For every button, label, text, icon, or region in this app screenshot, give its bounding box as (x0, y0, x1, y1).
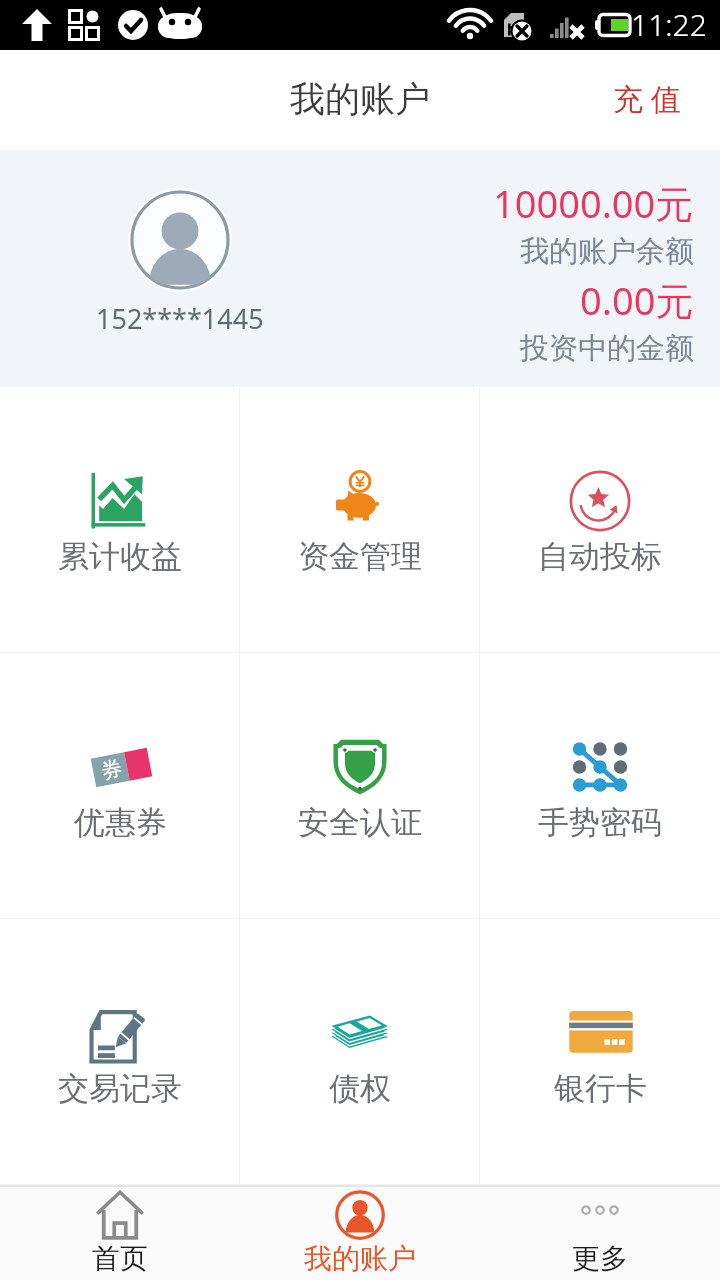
staticText: 自动投标 (538, 537, 662, 576)
button[interactable]: 我的账户 (240, 1187, 480, 1280)
staticText: 11:22 (631, 4, 707, 45)
staticText: 0.00元 (580, 274, 694, 326)
button[interactable]: 首页 (0, 1187, 240, 1280)
button[interactable]: 更多 (480, 1187, 720, 1280)
staticText: 我的账户 (290, 77, 430, 121)
button[interactable]: 交易记录 (0, 919, 240, 1184)
staticText: 累计收益 (58, 537, 182, 576)
button[interactable]: 手势密码 (480, 653, 720, 918)
staticText: 10000.00元 (493, 177, 694, 229)
staticText: 券 (99, 755, 125, 785)
staticText: 我的账户余额 (520, 233, 694, 270)
staticText: 更多 (572, 1241, 628, 1276)
button[interactable]: 自动投标 (480, 387, 720, 652)
button[interactable]: 累计收益 (0, 387, 240, 652)
button[interactable]: 债权 (240, 919, 480, 1184)
staticText: 交易记录 (58, 1069, 182, 1108)
staticText: 银行卡 (554, 1069, 647, 1108)
button[interactable]: 券 (0, 653, 240, 918)
staticText: 债权 (329, 1069, 391, 1108)
button[interactable]: 安全认证 (240, 653, 480, 918)
staticText: 充 值 (613, 78, 681, 119)
staticText: 安全认证 (298, 803, 422, 842)
button[interactable]: 资金管理 (240, 387, 480, 652)
button[interactable]: 充 值 (589, 64, 720, 137)
button[interactable]: 银行卡 (480, 919, 720, 1184)
staticText: 手势密码 (538, 803, 662, 842)
staticText: 我的账户 (304, 1241, 416, 1276)
staticText: 优惠券 (74, 803, 167, 842)
staticText: 投资中的金额 (520, 330, 694, 367)
staticText: 152****1445 (96, 300, 264, 337)
staticText: 首页 (92, 1241, 148, 1276)
staticText: 资金管理 (298, 537, 422, 576)
